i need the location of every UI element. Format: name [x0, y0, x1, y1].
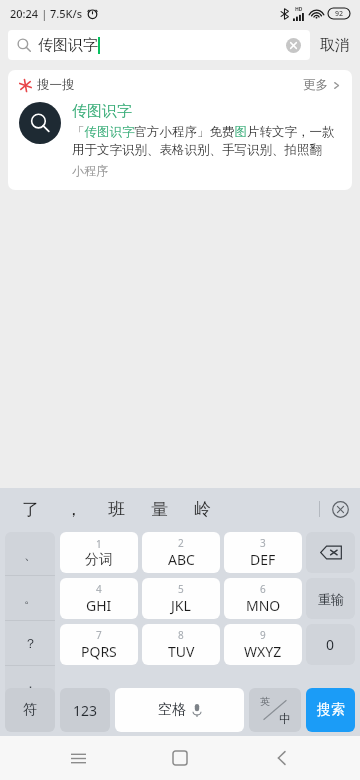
- staticText: 123: [73, 701, 98, 720]
- staticText: DEF: [250, 550, 276, 569]
- staticText: 4: [96, 582, 102, 596]
- staticText: 班: [108, 499, 125, 520]
- button[interactable]: 1: [60, 532, 138, 573]
- staticText: 20:24: [10, 6, 39, 21]
- button[interactable]: 重输: [306, 578, 355, 619]
- staticText: TUV: [168, 642, 195, 661]
- staticText: 英: [260, 695, 270, 708]
- staticText: 「传图识字官方小程序」免费图片转文字，一款用于文字识别、表格识别、手写识别、拍照…: [72, 124, 341, 158]
- button[interactable]: Delete: [306, 532, 355, 573]
- button[interactable]: Clear: [286, 38, 301, 53]
- staticText: 8: [178, 628, 184, 642]
- button[interactable]: 了: [22, 499, 39, 520]
- button[interactable]: ，: [65, 499, 82, 520]
- button[interactable]: 0: [306, 624, 355, 665]
- staticText: 9: [260, 628, 266, 642]
- staticText: WXYZ: [244, 642, 282, 661]
- button[interactable]: Recents: [54, 736, 102, 780]
- button[interactable]: 9: [224, 624, 302, 665]
- button[interactable]: 、: [5, 532, 55, 575]
- staticText: 空格: [158, 701, 186, 719]
- staticText: ：: [24, 680, 37, 696]
- staticText: 岭: [194, 499, 211, 520]
- staticText: 6: [260, 582, 266, 596]
- button[interactable]: 量: [151, 499, 168, 520]
- button[interactable]: Home: [156, 736, 204, 780]
- button[interactable]: ？: [5, 621, 55, 665]
- staticText: 3: [260, 536, 266, 550]
- staticText: ，: [65, 499, 82, 520]
- button[interactable]: 传图识字: [8, 30, 310, 60]
- button[interactable]: 岭: [194, 499, 211, 520]
- staticText: 5: [178, 582, 184, 596]
- button[interactable]: 3: [224, 532, 302, 573]
- button[interactable]: 空格: [115, 688, 244, 732]
- button[interactable]: 5: [142, 578, 220, 619]
- button[interactable]: 。: [5, 576, 55, 620]
- staticText: 传图识字: [38, 36, 98, 55]
- staticText: 取消: [320, 36, 350, 55]
- staticText: PQRS: [81, 642, 117, 661]
- staticText: 、: [24, 546, 37, 562]
- staticText: 更多: [303, 77, 328, 93]
- staticText: GHI: [86, 596, 112, 615]
- staticText: 92: [335, 9, 344, 19]
- staticText: ABC: [168, 550, 195, 569]
- staticText: |: [39, 7, 50, 21]
- staticText: 了: [22, 499, 39, 520]
- button[interactable]: Back: [258, 736, 306, 780]
- button[interactable]: ：: [5, 666, 55, 710]
- staticText: 搜索: [317, 701, 345, 719]
- staticText: 1: [96, 537, 102, 551]
- button[interactable]: 6: [224, 578, 302, 619]
- staticText: 搜一搜: [37, 77, 75, 93]
- staticText: 符: [23, 701, 37, 719]
- staticText: 小程序: [72, 163, 108, 178]
- button[interactable]: 8: [142, 624, 220, 665]
- staticText: 传图识字: [72, 102, 132, 121]
- button[interactable]: 取消: [320, 36, 350, 55]
- staticText: 分词: [85, 551, 113, 569]
- button[interactable]: 搜索: [306, 688, 355, 732]
- staticText: 2: [178, 536, 184, 550]
- staticText: JKL: [171, 596, 191, 615]
- button[interactable]: 2: [142, 532, 220, 573]
- staticText: 量: [151, 499, 168, 520]
- staticText: 中: [279, 711, 291, 726]
- button[interactable]: Close suggestions: [320, 488, 360, 530]
- button[interactable]: 传图识字: [8, 100, 352, 190]
- button[interactable]: 7: [60, 624, 138, 665]
- staticText: HD: [295, 6, 303, 13]
- button[interactable]: 符: [5, 688, 55, 732]
- staticText: 7: [96, 628, 102, 642]
- button[interactable]: 搜一搜: [8, 70, 352, 100]
- staticText: ？: [24, 635, 37, 651]
- staticText: 7.5K/s: [50, 6, 83, 21]
- staticText: 。: [24, 590, 37, 606]
- staticText: 0: [326, 635, 335, 654]
- button[interactable]: 班: [108, 499, 125, 520]
- staticText: 重输: [318, 591, 344, 607]
- button[interactable]: 123: [60, 688, 110, 732]
- button[interactable]: Switch language: [249, 688, 301, 732]
- staticText: MNO: [246, 596, 281, 615]
- button[interactable]: 4: [60, 578, 138, 619]
